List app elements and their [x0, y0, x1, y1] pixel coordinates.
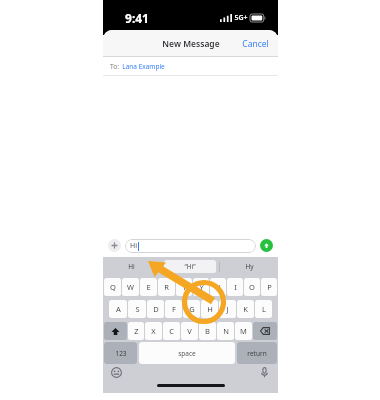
button[interactable]: K: [237, 300, 254, 318]
button[interactable]: J: [219, 300, 236, 318]
button[interactable]: To:: [103, 57, 278, 76]
button[interactable]: Z: [128, 322, 144, 340]
staticText: X: [151, 326, 156, 336]
button[interactable]: G: [183, 300, 200, 318]
button[interactable]: U: [210, 278, 226, 296]
button[interactable]: Hi: [106, 260, 157, 273]
staticText: Y: [199, 282, 204, 292]
staticText: Hi: [130, 241, 137, 251]
staticText: S: [135, 304, 140, 314]
button[interactable]: V: [181, 322, 198, 340]
staticText: V: [187, 326, 192, 336]
staticText: U: [215, 282, 221, 292]
staticText: L: [262, 304, 266, 314]
staticText: O: [249, 282, 255, 292]
button[interactable]: W: [122, 278, 139, 296]
staticText: Q: [110, 282, 116, 292]
button[interactable]: C: [163, 322, 180, 340]
staticText: H: [207, 304, 213, 314]
button[interactable]: D: [147, 300, 164, 318]
button[interactable]: 123: [104, 342, 137, 364]
button[interactable]: “Hi”: [164, 260, 216, 273]
button[interactable]: B: [199, 322, 216, 340]
button[interactable]: Cancel: [239, 35, 272, 53]
staticText: E: [146, 282, 151, 292]
button[interactable]: Dictate: [258, 366, 271, 379]
staticText: I: [234, 282, 237, 292]
staticText: K: [243, 304, 248, 314]
button[interactable]: Shift: [104, 322, 127, 340]
staticText: To:: [110, 62, 119, 71]
button[interactable]: Send: [260, 239, 273, 252]
staticText: 123: [115, 349, 127, 358]
button[interactable]: New Message: [162, 38, 220, 50]
button[interactable]: A: [109, 300, 127, 318]
button[interactable]: H: [201, 300, 218, 318]
staticText: “Hi”: [184, 262, 196, 271]
staticText: N: [223, 326, 229, 336]
button[interactable]: Backspace: [253, 322, 277, 340]
button[interactable]: T: [176, 278, 192, 296]
staticText: M: [240, 326, 247, 336]
staticText: R: [164, 282, 169, 292]
button[interactable]: Emoji: [110, 366, 123, 379]
button[interactable]: space: [139, 342, 235, 364]
button[interactable]: L: [255, 300, 272, 318]
staticText: 9:41: [125, 10, 149, 26]
staticText: B: [205, 326, 210, 336]
button[interactable]: X: [145, 322, 162, 340]
staticText: Lana Example: [122, 62, 165, 71]
button[interactable]: F: [165, 300, 182, 318]
button[interactable]: return: [237, 342, 277, 364]
button[interactable]: Q: [104, 278, 121, 296]
staticText: P: [267, 282, 272, 292]
button[interactable]: Hy: [223, 260, 275, 273]
staticText: F: [172, 304, 176, 314]
staticText: C: [169, 326, 174, 336]
staticText: W: [127, 282, 134, 292]
button[interactable]: Y: [193, 278, 209, 296]
staticText: Z: [134, 326, 139, 336]
staticText: T: [182, 282, 187, 292]
button[interactable]: S: [128, 300, 146, 318]
button[interactable]: O: [244, 278, 260, 296]
staticText: A: [116, 304, 121, 314]
button[interactable]: I: [227, 278, 243, 296]
staticText: G: [189, 304, 195, 314]
staticText: J: [226, 304, 229, 314]
staticText: space: [178, 349, 196, 358]
staticText: return: [247, 349, 267, 358]
button[interactable]: R: [158, 278, 175, 296]
button[interactable]: N: [217, 322, 234, 340]
staticText: Cancel: [242, 38, 269, 50]
button[interactable]: E: [140, 278, 157, 296]
button[interactable]: P: [261, 278, 277, 296]
staticText: Hi: [128, 262, 135, 271]
staticText: D: [153, 304, 159, 314]
button[interactable]: Add attachment: [108, 239, 121, 252]
button[interactable]: M: [235, 322, 252, 340]
button[interactable]: Hi: [125, 239, 256, 253]
staticText: 5G+: [234, 13, 248, 23]
staticText: Hy: [245, 262, 254, 271]
